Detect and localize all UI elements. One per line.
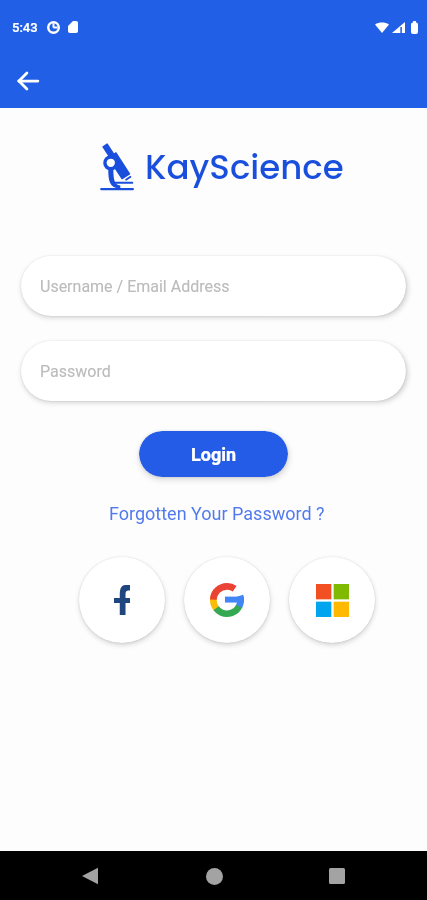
button[interactable]: Back (66, 852, 114, 900)
staticText: Password (40, 362, 111, 381)
button[interactable]: Login (139, 431, 288, 477)
button[interactable]: Sign in with Google (184, 557, 270, 643)
staticText: KayScience (145, 143, 344, 191)
staticText: Login (191, 444, 237, 465)
button[interactable]: Username / Email Address (21, 256, 406, 316)
button[interactable]: Sign in with Facebook (79, 557, 165, 643)
button[interactable]: Password (21, 341, 406, 401)
staticText: Forgotten Your Password ? (109, 503, 325, 524)
staticText: Username / Email Address (40, 277, 230, 296)
staticText: 5:43 (12, 20, 38, 35)
button[interactable]: Back (9, 62, 47, 100)
button[interactable]: Home (190, 852, 238, 900)
button[interactable]: Sign in with Microsoft (289, 557, 375, 643)
button[interactable]: Forgotten Your Password ? (103, 500, 331, 527)
button[interactable]: Recent apps (313, 852, 361, 900)
